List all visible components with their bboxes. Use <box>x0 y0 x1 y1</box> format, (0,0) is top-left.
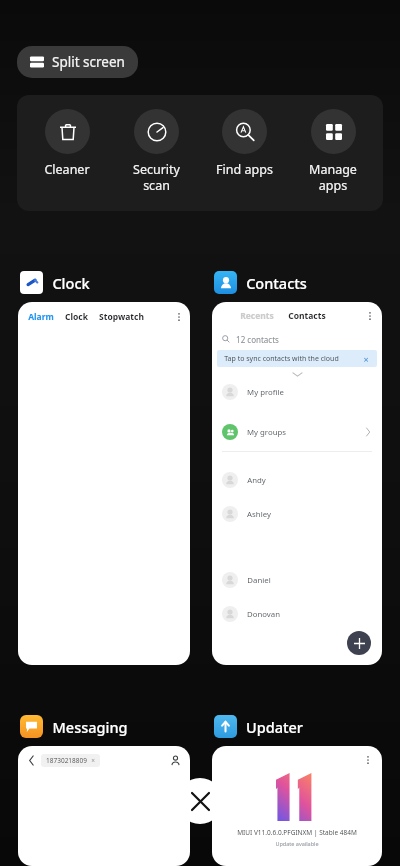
button[interactable]: Ashley <box>212 503 382 525</box>
button[interactable]: Tap to sync contacts with the cloud <box>217 350 377 367</box>
staticText: × <box>363 353 369 365</box>
staticText: My groups <box>247 427 286 438</box>
staticText: Updater <box>246 717 303 737</box>
staticText: Alarm <box>28 311 54 323</box>
button[interactable]: MIUI V11.0.6.0.PFGINXM | Stable 484M <box>212 746 382 866</box>
button[interactable]: Add contact <box>347 631 371 655</box>
staticText: Donovan <box>247 609 280 620</box>
staticText: My profile <box>247 387 284 398</box>
staticText: Update available <box>275 840 319 847</box>
button[interactable]: Recents <box>212 302 382 665</box>
button[interactable]: Manage apps <box>295 107 371 196</box>
staticText: Security scan <box>133 161 180 194</box>
staticText: × <box>91 756 95 765</box>
staticText: Messaging <box>52 717 128 737</box>
staticText: MIUI V11.0.6.0.PFGINXM | Stable 484M <box>237 828 357 837</box>
button[interactable]: Security scan <box>118 107 194 196</box>
staticText: Find apps <box>216 161 273 178</box>
staticText: Daniel <box>247 575 271 586</box>
staticText: Clock <box>52 273 90 293</box>
button[interactable]: My groups <box>212 421 382 443</box>
button[interactable]: Messaging <box>18 713 130 740</box>
staticText: Manage apps <box>309 161 357 194</box>
button[interactable]: Updater <box>212 713 305 740</box>
staticText: 18730218809 <box>46 756 87 765</box>
button[interactable]: 18730218809 <box>18 746 190 866</box>
button[interactable]: Alarm <box>18 302 190 665</box>
button[interactable]: Close all <box>177 778 223 824</box>
button[interactable]: Contacts <box>212 269 309 296</box>
staticText: Clock <box>65 311 88 323</box>
button[interactable]: Cleaner <box>29 107 105 180</box>
button[interactable]: Split screen <box>17 46 138 78</box>
staticText: Stopwatch <box>99 311 144 323</box>
staticText: Andy <box>247 475 266 486</box>
staticText: Split screen <box>52 53 125 71</box>
staticText: Contacts <box>246 273 307 293</box>
staticText: Tap to sync contacts with the cloud <box>224 354 339 364</box>
staticText: 12 contacts <box>236 334 279 345</box>
staticText: Ashley <box>247 509 271 520</box>
staticText: Contacts <box>288 310 326 322</box>
staticText: Recents <box>240 310 274 322</box>
button[interactable]: Daniel <box>212 569 382 591</box>
button[interactable]: Donovan <box>212 603 382 625</box>
button[interactable]: Find apps <box>206 107 282 180</box>
staticText: Cleaner <box>44 161 90 178</box>
button[interactable]: Clock <box>18 269 92 296</box>
button[interactable]: Andy <box>212 469 382 491</box>
button[interactable]: My profile <box>212 381 382 403</box>
